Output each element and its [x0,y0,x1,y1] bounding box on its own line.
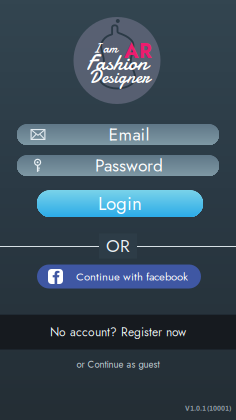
staticText: Login [98,190,142,217]
staticText: Fashion [86,48,147,78]
staticText: AR [124,36,152,65]
button[interactable]: Login [37,190,203,217]
staticText: No account? Register now [50,323,186,341]
button[interactable]: Continue with facebook [37,264,201,288]
staticText: I am [93,39,118,58]
staticText: V1.0.1 (10001) [185,405,231,412]
button[interactable]: or Continue as guest [72,354,163,375]
staticText: OR [106,233,130,258]
button[interactable]: Email [17,124,219,145]
staticText: or Continue as guest [76,358,159,371]
staticText: Email [108,122,149,147]
staticText: Designer [89,64,150,90]
button[interactable]: No account? Register now [0,314,236,350]
staticText: Password [95,153,163,178]
staticText: Continue with facebook [76,268,188,285]
button[interactable]: Password [17,155,219,176]
